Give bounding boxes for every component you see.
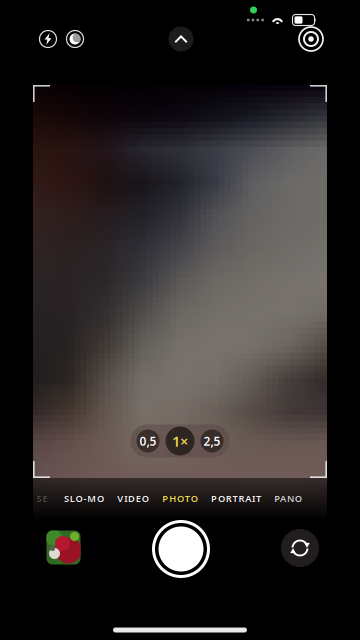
staticText: SE (37, 492, 47, 505)
button[interactable]: Photo library (46, 530, 80, 564)
staticText: PORTRAIT (211, 492, 261, 505)
button[interactable]: 2,5 (200, 426, 223, 455)
staticText: PHOTO (162, 492, 198, 505)
button[interactable]: 0,5 (136, 426, 159, 455)
button[interactable]: PANO (268, 481, 308, 516)
button[interactable]: VIDEO (111, 481, 155, 516)
button[interactable]: Take photo (151, 519, 211, 579)
staticText: 2,5 (203, 433, 220, 449)
button[interactable]: Night mode (59, 23, 91, 55)
button[interactable]: SE (31, 481, 53, 516)
staticText: PANO (274, 492, 302, 505)
button[interactable]: Switch camera (279, 527, 321, 569)
button[interactable]: SLO-MO (58, 481, 110, 516)
button[interactable]: Flash (32, 23, 64, 55)
staticText: 1× (172, 431, 188, 451)
staticText: VIDEO (117, 492, 149, 505)
staticText: 0,5 (139, 433, 156, 449)
button[interactable]: Live Photo (295, 23, 327, 55)
staticText: SLO-MO (64, 492, 104, 505)
button[interactable]: PHOTO (156, 481, 204, 516)
button[interactable]: More camera controls (165, 23, 197, 55)
button[interactable]: PORTRAIT (205, 481, 267, 516)
button[interactable]: 1× (165, 426, 194, 455)
